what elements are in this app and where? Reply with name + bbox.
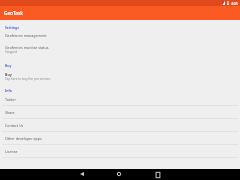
staticText: Buy [5,63,12,68]
button[interactable]: Tasker [0,93,240,106]
staticText: Buy [5,72,12,77]
staticText: Stopped [5,50,18,54]
button[interactable]: Buy [0,69,240,83]
button[interactable]: Share [0,106,240,119]
button[interactable]: License [0,145,240,158]
staticText: Tap here to buy the pro version [5,77,51,81]
button[interactable]: Contact Us [0,119,240,132]
staticText: Info [5,88,12,93]
button[interactable]: Recent apps [148,169,168,180]
staticText: Geofences management [5,33,47,38]
staticText: 4:05 [231,1,238,6]
button[interactable]: Back [72,169,92,180]
staticText: GeoTask [4,10,23,16]
staticText: Settings [5,25,19,30]
staticText: Share [5,110,15,115]
staticText: Contact Us [5,123,24,128]
staticText: Other developer apps [5,136,42,141]
button[interactable]: Home [109,169,129,180]
staticText: License [5,149,18,154]
button[interactable]: Other developer apps [0,132,240,145]
staticText: Tasker [5,97,16,102]
button[interactable]: Geofences management [0,29,240,41]
staticText: Geofences monitor status [5,45,49,50]
button[interactable]: Geofences monitor status [0,42,240,56]
